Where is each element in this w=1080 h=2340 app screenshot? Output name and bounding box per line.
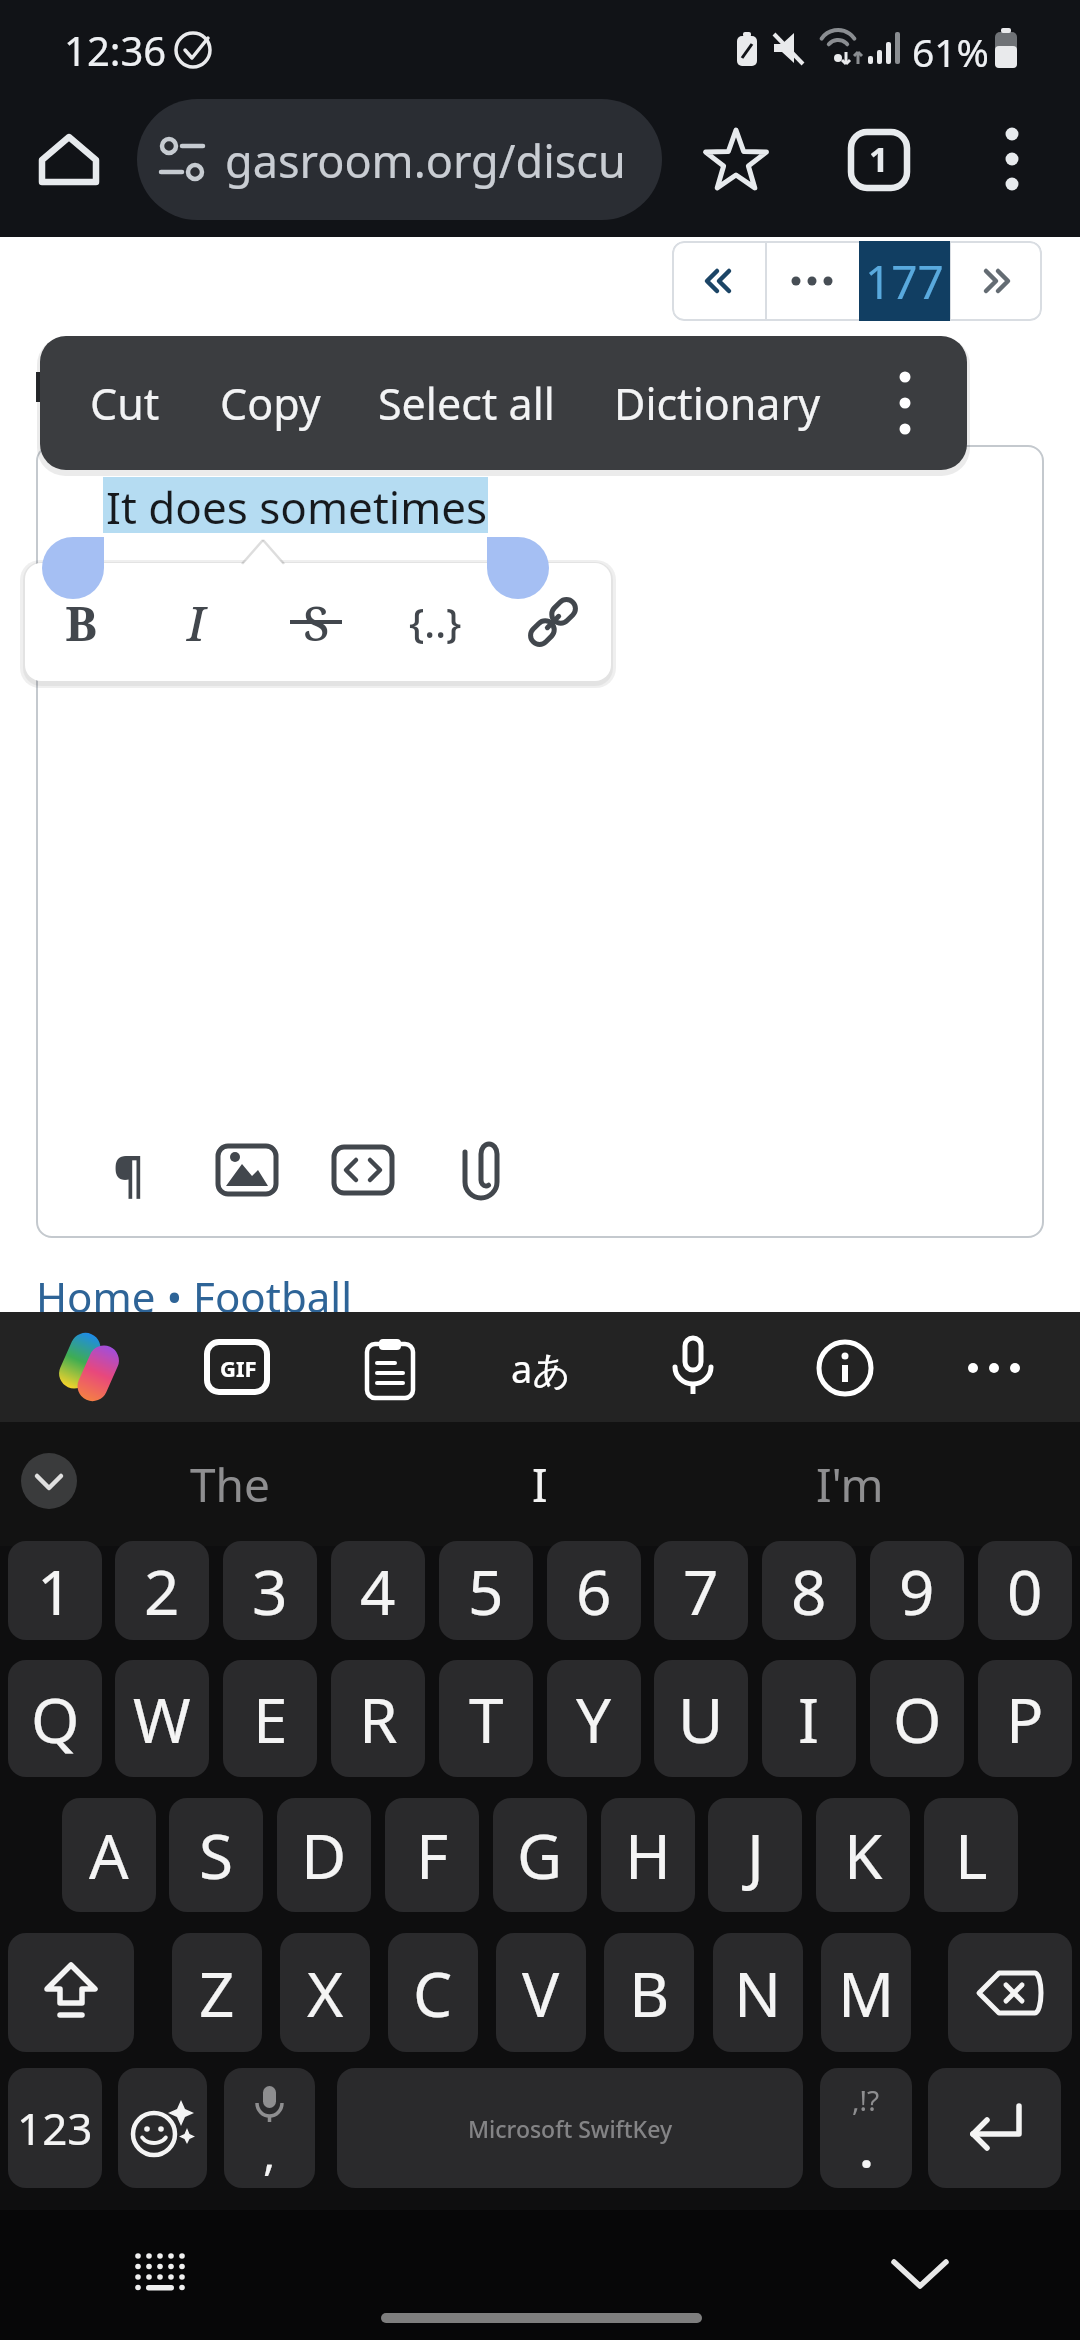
button[interactable] — [518, 580, 588, 664]
button[interactable]: M — [821, 1933, 911, 2052]
button[interactable] — [870, 336, 940, 470]
staticText: 8 — [791, 1549, 827, 1633]
button[interactable]: B — [48, 580, 114, 664]
button[interactable]: B — [604, 1933, 694, 2052]
button[interactable]: S — [283, 580, 349, 664]
button[interactable] — [928, 2068, 1061, 2188]
button[interactable] — [815, 1338, 875, 1398]
button[interactable]: ¶ — [100, 1142, 158, 1200]
button[interactable]: F — [385, 1798, 479, 1912]
button[interactable]: Q — [8, 1660, 102, 1777]
button[interactable]: 1 — [8, 1541, 102, 1640]
button[interactable] — [137, 99, 662, 220]
button[interactable]: G — [493, 1798, 587, 1912]
staticText: E — [253, 1677, 288, 1761]
button[interactable]: 123 — [8, 2068, 102, 2188]
button[interactable]: 1 — [840, 120, 918, 198]
button[interactable]: 5 — [439, 1541, 533, 1640]
button[interactable]: 9 — [870, 1541, 964, 1640]
button[interactable]: ,!? — [820, 2068, 912, 2188]
button[interactable]: 8 — [762, 1541, 856, 1640]
button[interactable]: {..} — [395, 580, 475, 664]
button[interactable]: V — [496, 1933, 586, 2052]
button[interactable]: I — [420, 1422, 660, 1546]
button[interactable]: J — [708, 1798, 802, 1912]
button[interactable]: L — [924, 1798, 1018, 1912]
staticText: W — [133, 1677, 191, 1761]
button[interactable]: X — [280, 1933, 370, 2052]
staticText: 61% — [912, 25, 990, 78]
button[interactable]: Y — [547, 1660, 641, 1777]
button[interactable]: I — [163, 580, 229, 664]
button[interactable]: 4 — [331, 1541, 425, 1640]
button[interactable]: E — [223, 1660, 317, 1777]
button[interactable] — [20, 1452, 78, 1510]
staticText: 6 — [576, 1549, 612, 1633]
button[interactable] — [948, 1933, 1072, 2052]
button[interactable] — [56, 1334, 122, 1400]
button[interactable]: Z — [172, 1933, 262, 2052]
button[interactable] — [332, 1140, 394, 1200]
button[interactable]: Select all — [378, 374, 555, 433]
button[interactable]: 6 — [547, 1541, 641, 1640]
button[interactable] — [665, 1334, 721, 1402]
button[interactable] — [362, 1338, 418, 1400]
button[interactable] — [8, 1933, 134, 2052]
button[interactable]: N — [713, 1933, 803, 2052]
button[interactable]: I'm — [720, 1422, 980, 1546]
button[interactable]: Dictionary — [614, 374, 821, 433]
button[interactable]: 3 — [223, 1541, 317, 1640]
button[interactable] — [30, 120, 108, 198]
button[interactable] — [950, 241, 1042, 321]
button[interactable]: 177 — [859, 241, 950, 321]
button[interactable]: K — [816, 1798, 910, 1912]
staticText: P — [1006, 1677, 1044, 1761]
button[interactable] — [960, 1354, 1030, 1382]
button[interactable]: T — [439, 1660, 533, 1777]
staticText: It does sometimes — [106, 477, 488, 533]
button[interactable]: 0 — [978, 1541, 1072, 1640]
button[interactable]: C — [388, 1933, 478, 2052]
staticText: . — [860, 2119, 873, 2182]
button[interactable]: aあ — [505, 1336, 577, 1400]
staticText: , — [263, 2121, 276, 2184]
staticText: 1 — [37, 1549, 73, 1633]
button[interactable]: W — [115, 1660, 209, 1777]
button[interactable]: R — [331, 1660, 425, 1777]
button[interactable] — [131, 2248, 191, 2298]
button[interactable]: 2 — [115, 1541, 209, 1640]
button[interactable] — [672, 241, 766, 321]
button[interactable]: I — [762, 1660, 856, 1777]
button[interactable]: , — [224, 2068, 315, 2188]
button[interactable]: The — [105, 1422, 355, 1546]
button[interactable]: Cut — [90, 374, 160, 433]
button[interactable] — [214, 1140, 280, 1200]
button[interactable] — [118, 2068, 207, 2188]
button[interactable]: O — [870, 1660, 964, 1777]
staticText: J — [747, 1813, 764, 1897]
button[interactable]: P — [978, 1660, 1072, 1777]
button[interactable] — [880, 2244, 960, 2304]
button[interactable]: U — [654, 1660, 748, 1777]
staticText: G — [517, 1813, 563, 1897]
staticText: V — [522, 1951, 560, 2035]
button[interactable]: D — [277, 1798, 371, 1912]
button[interactable]: S — [169, 1798, 263, 1912]
staticText: ,!? — [852, 2081, 880, 2119]
button[interactable] — [766, 241, 858, 321]
button[interactable]: GIF — [205, 1340, 271, 1396]
staticText: 177 — [865, 250, 944, 313]
staticText: ¶ — [113, 1142, 145, 1200]
staticText: D — [301, 1813, 347, 1897]
button[interactable] — [455, 1138, 511, 1206]
staticText: B — [65, 590, 98, 655]
button[interactable]: H — [601, 1798, 695, 1912]
button[interactable] — [973, 120, 1051, 198]
button[interactable]: Copy — [220, 374, 321, 433]
staticText: gasroom.org/discu — [225, 130, 626, 191]
button[interactable]: 7 — [654, 1541, 748, 1640]
button[interactable] — [697, 120, 775, 198]
button[interactable]: A — [62, 1798, 156, 1912]
staticText: 7 — [683, 1549, 719, 1633]
button[interactable]: Microsoft SwiftKey — [337, 2068, 803, 2188]
